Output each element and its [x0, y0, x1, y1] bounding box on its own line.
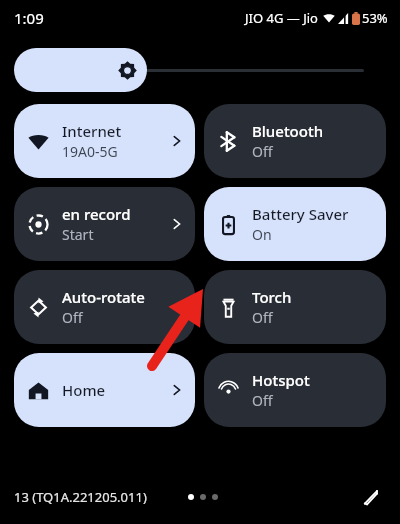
staticText: Hotspot — [252, 370, 310, 390]
staticText: JIO 4G — Jio — [245, 9, 318, 27]
button[interactable]: Brightness — [14, 48, 147, 92]
staticText: Torch — [252, 287, 292, 307]
staticText: Internet — [62, 121, 122, 141]
staticText: en record — [62, 204, 131, 224]
staticText: Home — [62, 380, 106, 400]
staticText: 19A0-5G — [62, 142, 118, 161]
button[interactable]: en record — [14, 187, 195, 261]
staticText: Battery Saver — [252, 204, 349, 224]
staticText: Start — [62, 225, 94, 244]
staticText: 13 (TQ1A.221205.011) — [14, 488, 147, 506]
staticText: Bluetooth — [252, 121, 324, 141]
staticText: Auto-rotate — [62, 287, 145, 307]
staticText: Off — [252, 308, 273, 327]
button[interactable]: Torch — [204, 270, 386, 344]
staticText: Off — [252, 142, 273, 161]
staticText: On — [252, 225, 272, 244]
staticText: Off — [62, 308, 83, 327]
staticText: 1:09 — [14, 8, 44, 28]
button[interactable]: Battery Saver — [204, 187, 386, 261]
button[interactable]: Internet — [14, 104, 195, 178]
button[interactable]: Edit tiles — [350, 477, 390, 517]
button[interactable]: Hotspot — [204, 353, 386, 427]
staticText: Off — [252, 391, 273, 410]
button[interactable]: Auto-rotate — [14, 270, 195, 344]
button[interactable]: Home — [14, 353, 195, 427]
button[interactable]: Bluetooth — [204, 104, 386, 178]
staticText: 53% — [362, 9, 388, 27]
